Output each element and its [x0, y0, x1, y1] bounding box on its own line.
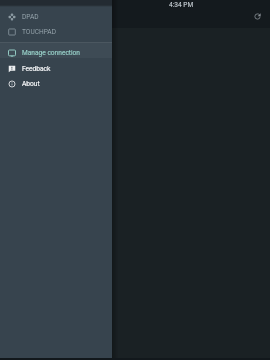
staticText: Manage connection	[22, 49, 81, 57]
staticText: DPAD	[22, 13, 39, 21]
staticText: 4:34 PM	[169, 1, 194, 9]
button[interactable]: Manage connection	[0, 45, 112, 60]
staticText: About	[22, 80, 40, 88]
button[interactable]: Refresh	[249, 8, 265, 24]
staticText: TOUCHPAD	[22, 28, 56, 36]
button[interactable]: TOUCHPAD	[0, 24, 112, 39]
button[interactable]: DPAD	[0, 9, 112, 24]
button[interactable]: About	[0, 76, 112, 91]
staticText: Feedback	[22, 65, 51, 73]
button[interactable]: Feedback	[0, 61, 112, 76]
